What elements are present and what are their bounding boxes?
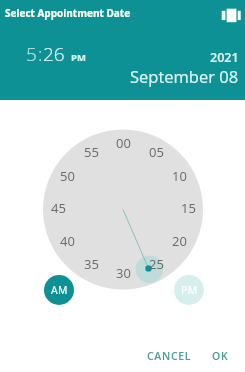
- button[interactable]: 10: [166, 166, 192, 186]
- button[interactable]: September 08: [130, 65, 239, 87]
- button[interactable]: 30: [110, 263, 136, 283]
- staticText: 55: [84, 143, 99, 161]
- button[interactable]: 20: [166, 231, 192, 251]
- button[interactable]: Switch to text input mode: [219, 6, 243, 24]
- staticText: 40: [60, 232, 75, 250]
- button[interactable]: 45: [45, 198, 71, 218]
- staticText: AM: [51, 283, 68, 297]
- staticText: 2021: [210, 49, 239, 66]
- staticText: 26: [43, 41, 65, 67]
- staticText: Select Appointment Date: [5, 6, 131, 20]
- button[interactable]: 55: [78, 142, 104, 162]
- button[interactable]: PM: [71, 51, 86, 64]
- button[interactable]: 05: [143, 142, 169, 162]
- staticText: September 08: [130, 65, 239, 87]
- staticText: 5: [26, 41, 37, 67]
- staticText: 25: [149, 255, 164, 273]
- button[interactable]: 00: [110, 133, 136, 153]
- button[interactable]: 26: [43, 41, 65, 67]
- button[interactable]: 40: [54, 231, 80, 251]
- staticText: 05: [149, 143, 164, 161]
- staticText: 30: [116, 264, 131, 282]
- button[interactable]: 15: [175, 198, 201, 218]
- staticText: OK: [212, 349, 229, 363]
- button[interactable]: OK: [207, 345, 234, 367]
- staticText: PM: [71, 51, 86, 64]
- button[interactable]: PM: [174, 275, 204, 305]
- button[interactable]: AM: [44, 275, 74, 305]
- button[interactable]: 50: [54, 166, 80, 186]
- button[interactable]: 35: [78, 254, 104, 274]
- staticText: 10: [172, 167, 187, 185]
- staticText: :: [38, 41, 43, 67]
- button[interactable]: 25: [143, 254, 169, 274]
- staticText: 15: [181, 199, 196, 217]
- staticText: PM: [181, 283, 198, 297]
- staticText: 50: [60, 167, 75, 185]
- staticText: 35: [84, 255, 99, 273]
- button[interactable]: CANCEL: [142, 345, 197, 367]
- staticText: 45: [51, 199, 66, 217]
- staticText: 00: [116, 134, 131, 152]
- button[interactable]: 2021: [210, 49, 239, 66]
- staticText: 20: [172, 232, 187, 250]
- button[interactable]: 5: [26, 41, 37, 67]
- staticText: CANCEL: [147, 349, 192, 363]
